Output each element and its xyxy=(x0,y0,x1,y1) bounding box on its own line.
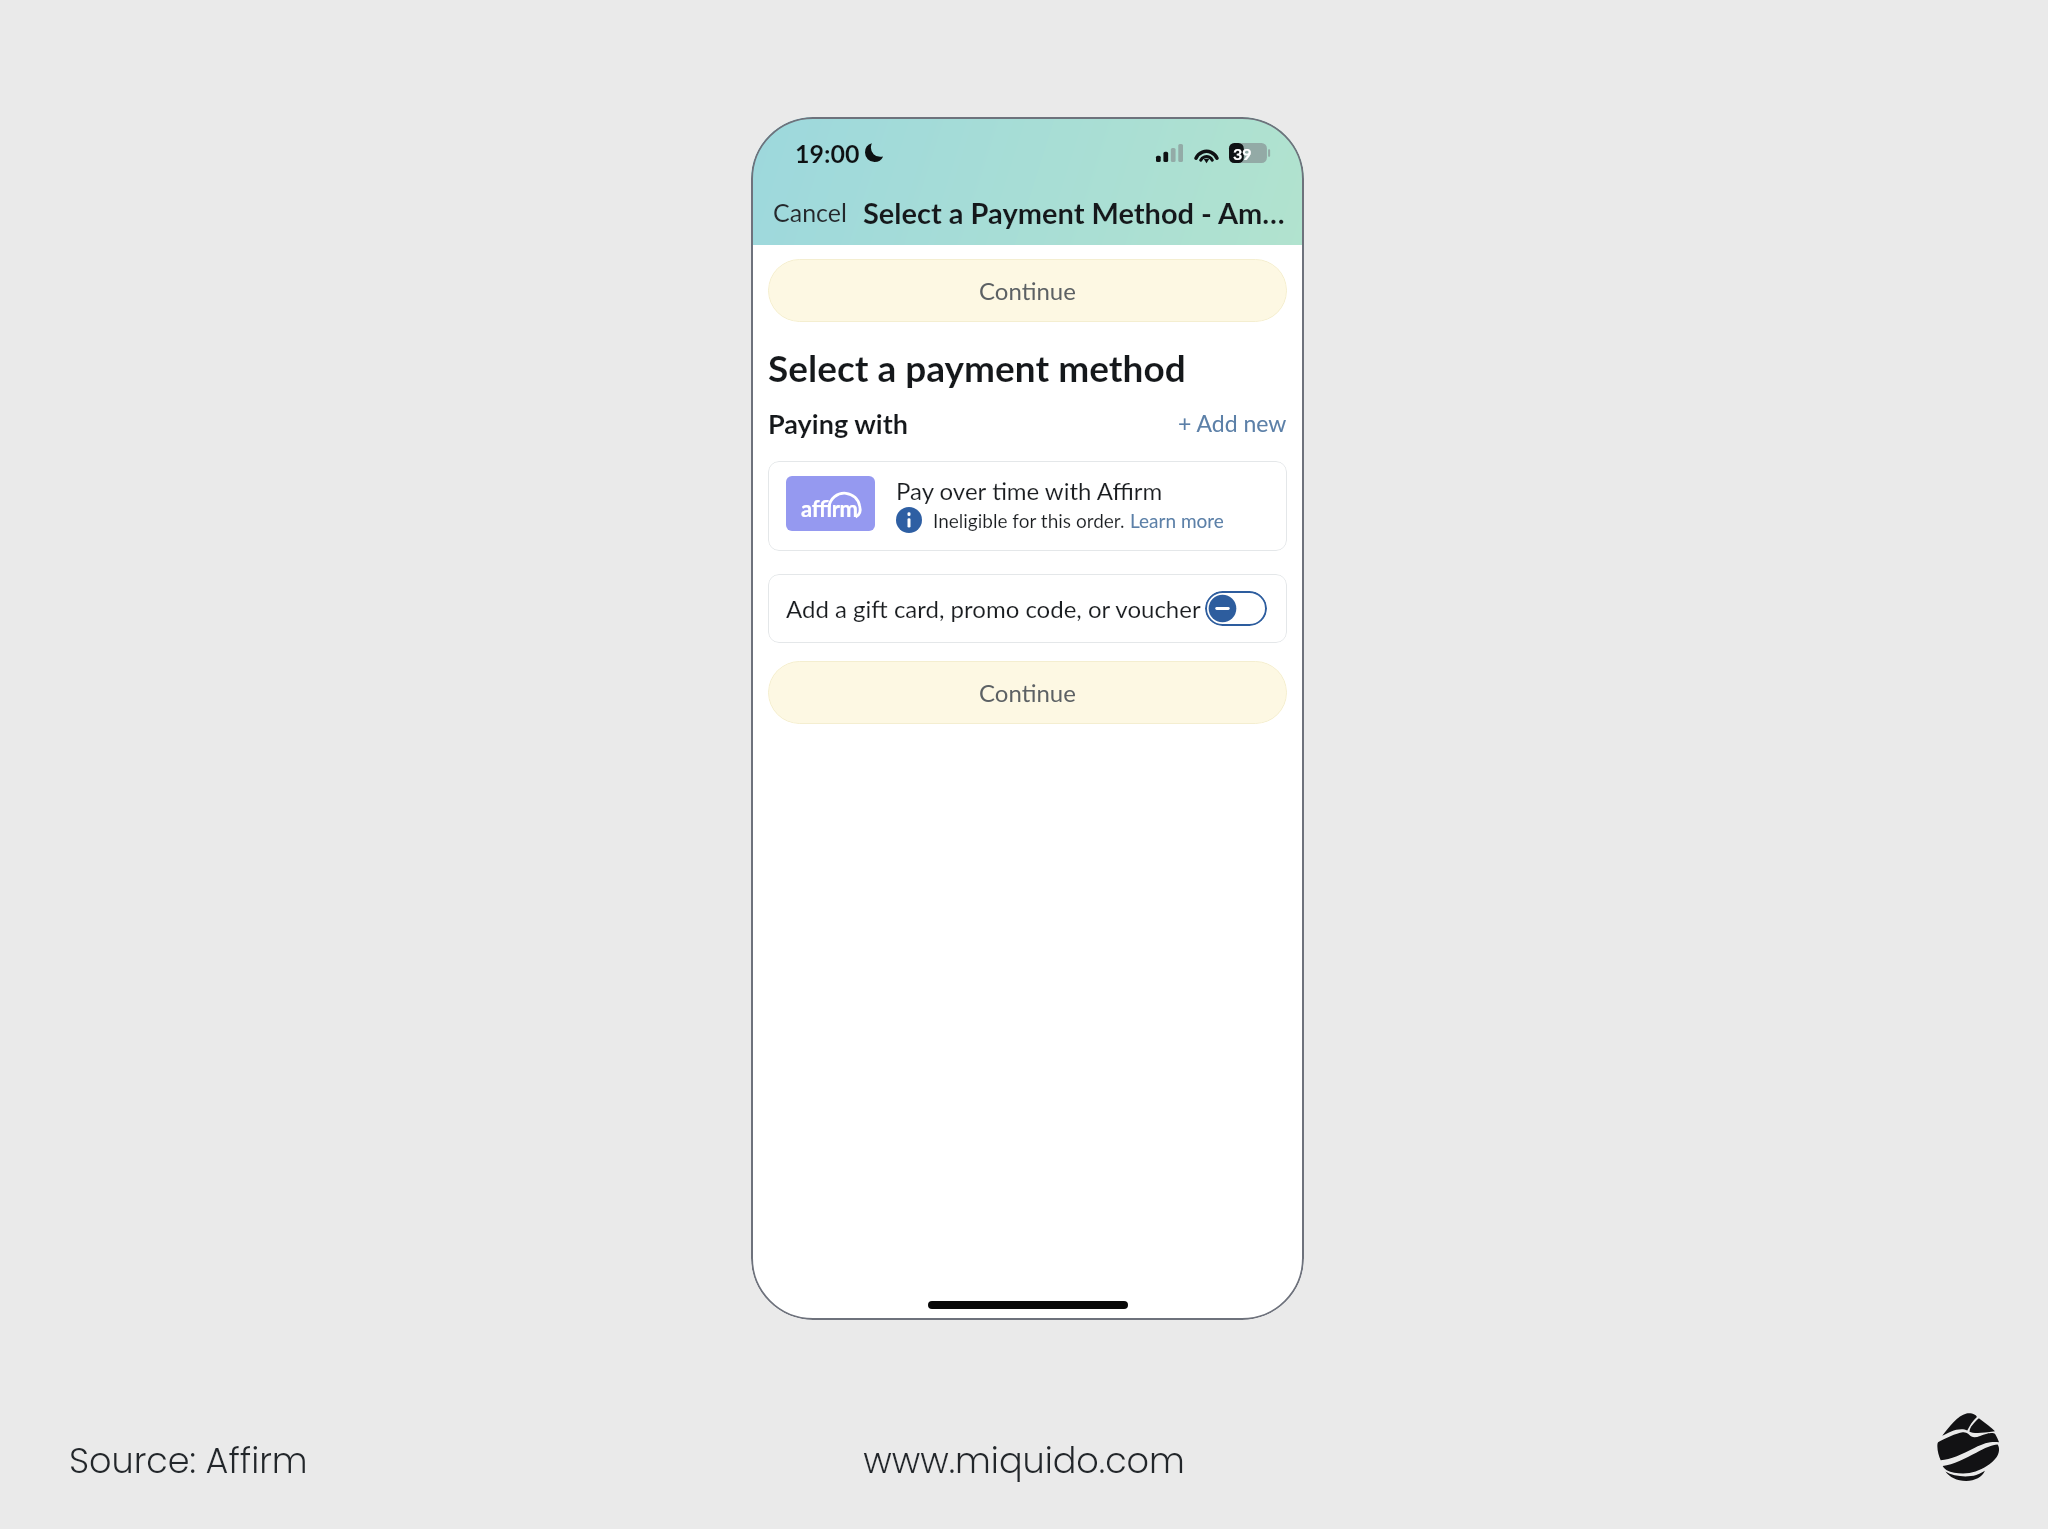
staticText: Pay over time with Affirm xyxy=(896,476,1163,505)
staticText: www.miquido.com xyxy=(863,1436,1185,1485)
staticText: Continue xyxy=(979,276,1076,305)
button[interactable]: Learn more xyxy=(1130,509,1224,532)
button[interactable]: Affirm xyxy=(768,461,1287,551)
button[interactable]: Add a gift card, promo code, or voucher xyxy=(768,574,1287,643)
staticText: Cancel xyxy=(773,197,847,227)
staticText: 19:00 xyxy=(795,138,860,168)
staticText: Source: Affirm xyxy=(69,1436,308,1485)
staticText: Paying with xyxy=(768,407,908,439)
button[interactable]: Continue xyxy=(768,259,1287,322)
other: Wi-Fi xyxy=(1194,144,1219,162)
other: Cellular signal xyxy=(1156,144,1183,162)
staticText: Ineligible for this order. xyxy=(933,509,1130,532)
staticText: Select a Payment Method - Am… xyxy=(863,195,1285,230)
button[interactable]: Add a gift card, promo code, or voucher xyxy=(1205,591,1267,626)
button[interactable]: Cancel xyxy=(773,197,847,227)
other: Affirm xyxy=(786,476,875,531)
other: Battery 39 percent xyxy=(1229,143,1270,163)
staticText: affirm xyxy=(801,495,858,521)
staticText: 39 xyxy=(1233,144,1252,163)
staticText: Learn more xyxy=(1130,509,1224,532)
button[interactable]: + Add new xyxy=(1178,409,1287,437)
staticText: Select a payment method xyxy=(768,345,1186,389)
staticText: Continue xyxy=(979,678,1076,707)
other: Miquido xyxy=(1933,1411,2000,1481)
staticText: Add a gift card, promo code, or voucher xyxy=(786,594,1201,623)
other: Do not disturb xyxy=(865,143,884,162)
other: Information xyxy=(896,507,922,533)
button[interactable]: Continue xyxy=(768,661,1287,724)
staticText: + Add new xyxy=(1178,409,1287,437)
